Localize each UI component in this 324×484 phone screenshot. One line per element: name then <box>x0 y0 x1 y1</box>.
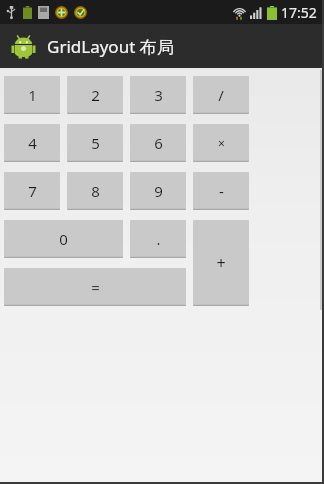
staticText: 7 <box>28 181 37 201</box>
staticText: + <box>216 252 226 274</box>
button[interactable]: 6 <box>130 124 186 162</box>
button[interactable]: 0 <box>4 220 123 258</box>
button[interactable]: 1 <box>4 76 60 114</box>
staticText: 5 <box>91 133 100 153</box>
staticText: 17:52 <box>281 3 317 22</box>
staticText: 4 <box>28 133 37 153</box>
staticText: = <box>91 277 100 297</box>
staticText: . <box>156 229 161 249</box>
staticText: - <box>219 181 224 201</box>
button[interactable]: - <box>193 172 249 210</box>
button[interactable]: . <box>130 220 186 258</box>
staticText: 8 <box>91 181 100 201</box>
button[interactable]: 2 <box>67 76 123 114</box>
staticText: 2 <box>91 85 100 105</box>
staticText: 3 <box>154 85 163 105</box>
button[interactable]: 3 <box>130 76 186 114</box>
button[interactable]: / <box>193 76 249 114</box>
staticText: 9 <box>154 181 163 201</box>
button[interactable]: + <box>193 220 249 306</box>
button[interactable]: × <box>193 124 249 162</box>
button[interactable]: 5 <box>67 124 123 162</box>
staticText: / <box>218 85 224 105</box>
button[interactable]: 4 <box>4 124 60 162</box>
staticText: GridLayout 布局 <box>47 35 174 58</box>
button[interactable]: 9 <box>130 172 186 210</box>
staticText: 6 <box>154 133 163 153</box>
button[interactable]: 8 <box>67 172 123 210</box>
staticText: × <box>218 135 225 151</box>
button[interactable]: 7 <box>4 172 60 210</box>
staticText: 1 <box>28 85 37 105</box>
staticText: 0 <box>59 229 68 249</box>
button[interactable]: = <box>4 268 186 306</box>
